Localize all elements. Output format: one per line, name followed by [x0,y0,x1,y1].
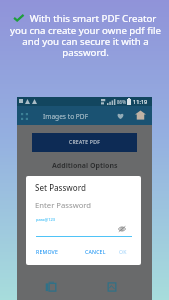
button[interactable]: PDF files [44,280,58,294]
button[interactable]: Home [133,108,147,122]
button[interactable]: Show password [116,223,128,235]
staticText: With this smart PDF Creator you cna crea… [1,12,169,59]
staticText: pass@123 [36,217,55,222]
staticText: 11:19 [133,98,148,106]
button[interactable]: REMOVE [36,248,59,255]
button[interactable]: CREATE PDF [32,133,137,152]
staticText: Enter Password [35,200,92,210]
button[interactable]: OK [119,248,127,255]
staticText: Additional Options [52,161,118,171]
staticText: Set Password [35,182,86,193]
staticText: CREATE PDF [69,139,101,146]
button[interactable]: Favorite [114,109,127,122]
button[interactable]: CANCEL [85,248,106,255]
button[interactable]: Images [105,280,119,294]
button[interactable]: Menu [17,109,31,123]
staticText: Images to PDF [43,112,89,121]
staticText: 86% [117,99,126,105]
